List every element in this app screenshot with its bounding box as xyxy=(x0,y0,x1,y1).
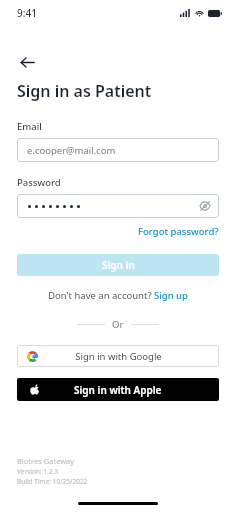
staticText: Sign in as Patient xyxy=(17,80,152,102)
button[interactable]: Sign up xyxy=(154,289,188,302)
staticText: e.cooper@mail.com xyxy=(27,144,116,157)
button[interactable]: Sign in with Apple xyxy=(17,378,219,401)
button[interactable]: e.cooper@mail.com xyxy=(17,138,219,162)
button[interactable]: Sign in with Google xyxy=(17,345,219,367)
button[interactable]: Show password xyxy=(196,197,214,215)
staticText: Build Time: 10/25/2022 xyxy=(17,477,88,486)
staticText: Sign in with Google xyxy=(75,350,162,363)
staticText: Biotres Gateway xyxy=(17,456,75,466)
staticText: 9:41 xyxy=(17,6,37,20)
staticText: Don't have an account? xyxy=(48,289,154,302)
staticText: Forgot password? xyxy=(138,225,219,238)
staticText: Sign in xyxy=(102,258,135,272)
staticText: Password xyxy=(17,176,61,189)
button[interactable]: Back xyxy=(13,48,41,76)
button[interactable]: Sign in xyxy=(17,254,219,276)
staticText: Or xyxy=(112,318,124,331)
staticText: Sign up xyxy=(154,289,188,302)
staticText: Email xyxy=(17,120,42,133)
button[interactable]: Forgot password? xyxy=(138,223,219,240)
button[interactable]: Show password xyxy=(17,194,219,218)
staticText: Sign in with Apple xyxy=(74,383,162,397)
staticText: Version: 1.2.3 xyxy=(17,467,58,476)
